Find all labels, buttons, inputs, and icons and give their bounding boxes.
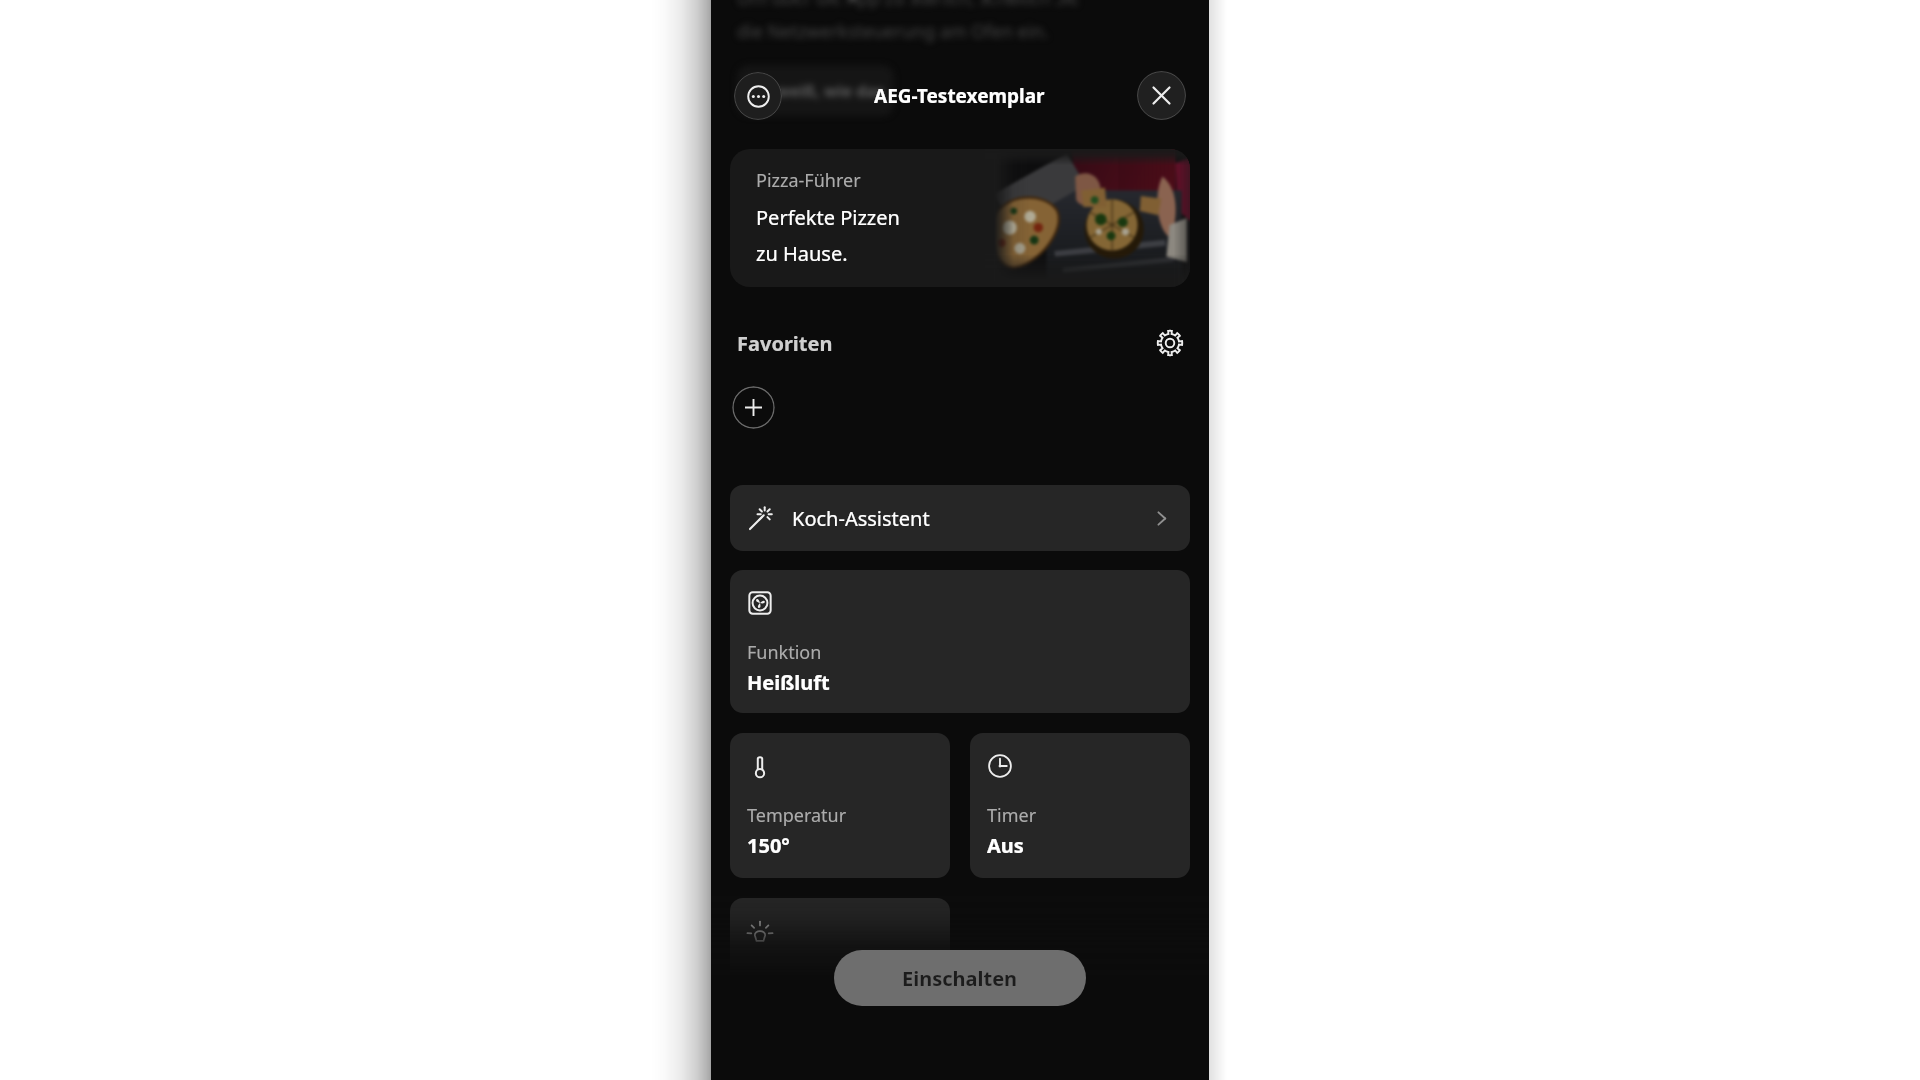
staticText: Timer bbox=[987, 803, 1037, 828]
button[interactable]: Beleuchtung bbox=[730, 898, 950, 1043]
button[interactable]: Koch-Assistent bbox=[730, 485, 1190, 551]
staticText: Aus bbox=[987, 832, 1024, 859]
staticText: Ich weiß, wie das bbox=[747, 80, 884, 102]
button[interactable]: Close bbox=[1137, 71, 1186, 120]
staticText: Heißluft bbox=[747, 669, 830, 696]
button[interactable]: Funktion bbox=[730, 570, 1190, 713]
staticText: Einschalten bbox=[902, 965, 1018, 992]
button[interactable]: Einschalten bbox=[834, 950, 1086, 1006]
button[interactable]: Timer bbox=[970, 733, 1190, 878]
button[interactable]: Settings bbox=[1153, 326, 1187, 360]
staticText: zu Hause. bbox=[756, 240, 848, 267]
staticText: Perfekte Pizzen bbox=[756, 204, 900, 231]
staticText: Funktion bbox=[747, 640, 822, 665]
staticText: Favoriten bbox=[737, 330, 833, 357]
staticText: Koch-Assistent bbox=[792, 505, 930, 532]
button[interactable]: Add favorite bbox=[732, 386, 775, 429]
button[interactable]: Pizza-Führer bbox=[730, 149, 1190, 287]
button[interactable]: More options bbox=[734, 72, 782, 120]
button[interactable]: Temperatur bbox=[730, 733, 950, 878]
staticText: AEG-Testexemplar bbox=[874, 83, 1045, 109]
staticText: Um über die App zu starten, schalten Sie bbox=[737, 0, 1080, 11]
staticText: 150° bbox=[747, 832, 790, 859]
staticText: Pizza-Führer bbox=[756, 168, 861, 193]
staticText: die Netzwerksteuerung am Ofen ein. bbox=[737, 19, 1049, 44]
staticText: Temperatur bbox=[747, 803, 847, 828]
